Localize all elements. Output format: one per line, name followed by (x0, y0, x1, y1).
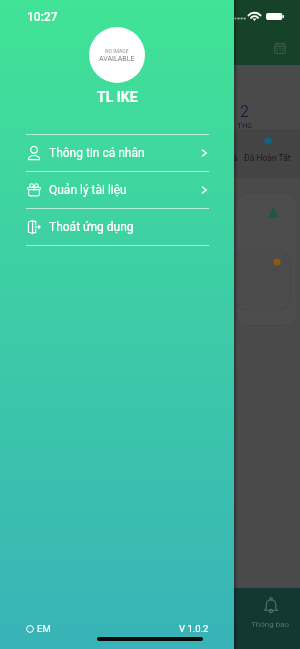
staticText: TH2 (237, 121, 253, 130)
staticText: 10:27 (27, 10, 58, 24)
button[interactable]: Thoát ứng dụng (0, 209, 234, 245)
staticText: NO IMAGE (105, 48, 129, 54)
staticText: Quản lý tài liệu (49, 183, 127, 197)
staticText: TL IKE (97, 89, 138, 105)
button[interactable]: Calendar (268, 36, 291, 59)
staticText: Thông báo (251, 620, 290, 629)
button[interactable]: Thông báo (240, 588, 300, 649)
staticText: AVAILABLE (99, 55, 135, 63)
button[interactable] (236, 194, 297, 325)
button[interactable] (120, 588, 180, 649)
staticText: Đã Hoàn Tất (244, 153, 291, 163)
staticText: Thoát ứng dụng (49, 220, 134, 234)
button[interactable] (60, 588, 120, 649)
button[interactable] (0, 588, 60, 649)
staticText: V 1.0.2 (179, 623, 209, 634)
staticText: Giá (225, 153, 238, 163)
staticText: Thông tin cá nhân (49, 146, 145, 160)
staticText: EM (37, 623, 51, 634)
staticText: 2 (240, 102, 249, 121)
button[interactable] (180, 588, 240, 649)
button[interactable]: Thông tin cá nhân (0, 135, 234, 171)
button[interactable]: Quản lý tài liệu (0, 172, 234, 208)
